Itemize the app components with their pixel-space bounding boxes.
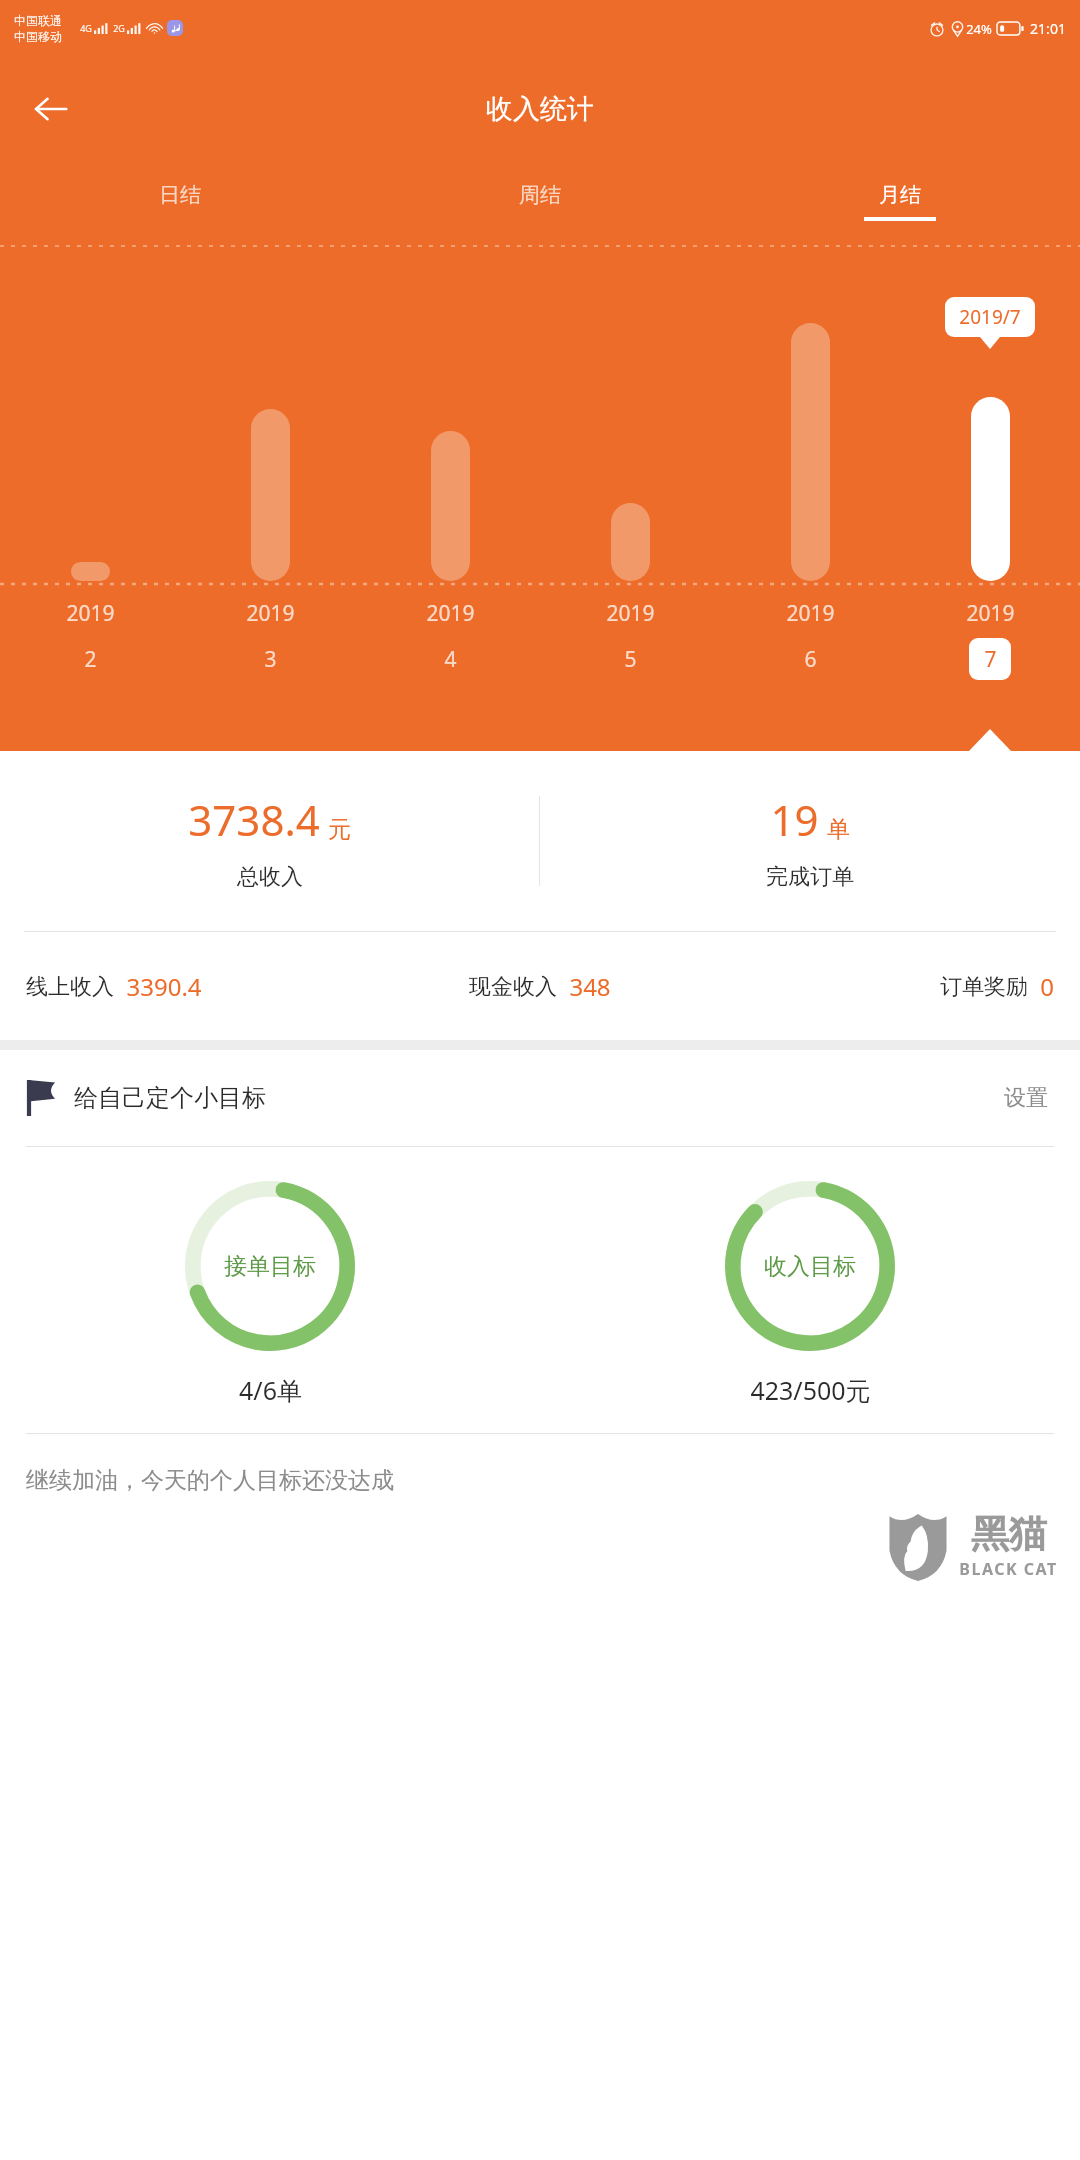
button[interactable]: 2019 <box>900 599 1080 680</box>
button[interactable]: 2019 <box>180 599 360 680</box>
staticText: 线上收入 <box>26 973 114 1001</box>
staticText: 21:01 <box>1030 19 1066 38</box>
button[interactable]: 2019 <box>720 599 900 680</box>
button[interactable]: 2019 <box>540 599 720 680</box>
button[interactable]: 返回 <box>22 80 80 138</box>
staticText: 接单目标 <box>224 1252 316 1281</box>
staticText: 19 <box>770 791 819 848</box>
staticText: 收入目标 <box>764 1252 856 1281</box>
button[interactable]: 2019 <box>0 599 180 680</box>
staticText: 2019 <box>246 599 295 628</box>
staticText: 348 <box>569 970 611 1003</box>
staticText: 5 <box>624 645 637 674</box>
staticText: 月结 <box>879 182 921 208</box>
staticText: 2019 <box>786 599 835 628</box>
staticText: 黑猫 <box>971 1510 1047 1558</box>
staticText: 总收入 <box>237 863 303 891</box>
staticText: 完成订单 <box>766 863 854 891</box>
staticText: 给自己定个小目标 <box>74 1083 266 1113</box>
staticText: 7 <box>984 645 997 674</box>
button[interactable]: 周结 <box>360 161 720 241</box>
staticText: 4 <box>444 645 457 674</box>
staticText: 中国联通 <box>14 13 62 28</box>
staticText: 收入统计 <box>486 92 594 126</box>
staticText: 订单奖励 <box>940 973 1028 1001</box>
staticText: 24% <box>966 20 992 38</box>
button[interactable]: 收入目标 <box>540 1181 1080 1407</box>
staticText: 3738.4 <box>188 791 320 848</box>
staticText: 2019/7 <box>959 304 1021 330</box>
staticText: 日结 <box>159 182 201 208</box>
button[interactable]: 日结 <box>0 161 360 241</box>
staticText: 423/500元 <box>750 1373 871 1407</box>
staticText: 2019 <box>66 599 115 628</box>
staticText: 现金收入 <box>469 973 557 1001</box>
staticText: 周结 <box>519 182 561 208</box>
staticText: 继续加油，今天的个人目标还没达成 <box>26 1466 394 1495</box>
staticText: 3 <box>264 645 277 674</box>
staticText: 2019 <box>606 599 655 628</box>
staticText: 3390.4 <box>126 970 202 1003</box>
staticText: 6 <box>804 645 817 674</box>
staticText: 2G <box>113 22 125 34</box>
staticText: BLACK CAT <box>959 1558 1058 1580</box>
button[interactable]: 接单目标 <box>0 1181 540 1407</box>
staticText: 2019 <box>966 599 1015 628</box>
staticText: 设置 <box>1004 1084 1048 1112</box>
button[interactable]: 2019 <box>360 599 540 680</box>
staticText: 元 <box>328 815 351 844</box>
staticText: 单 <box>827 815 850 844</box>
staticText: 4G <box>80 22 92 34</box>
button[interactable]: 月结 <box>720 161 1080 241</box>
button[interactable]: 设置 <box>998 1078 1054 1118</box>
staticText: 2 <box>84 645 97 674</box>
staticText: 2019 <box>426 599 475 628</box>
staticText: 4/6单 <box>239 1373 302 1407</box>
staticText: 0 <box>1040 970 1054 1003</box>
staticText: 中国移动 <box>14 29 62 44</box>
